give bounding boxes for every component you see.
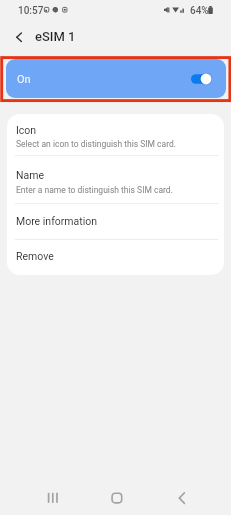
staticText: Icon	[16, 124, 37, 136]
staticText: Remove	[16, 250, 54, 262]
staticText: eSIM 1	[35, 29, 76, 44]
button[interactable]: Remove	[7, 239, 224, 275]
button[interactable]: Home	[100, 481, 134, 515]
button[interactable]: On	[6, 59, 226, 98]
staticText: Select an icon to distinguish this SIM c…	[16, 139, 177, 149]
staticText: Name	[16, 169, 44, 181]
staticText: More information	[16, 215, 98, 227]
staticText: Enter a name to distinguish this SIM car…	[16, 185, 173, 195]
button[interactable]: Name	[7, 155, 224, 203]
button[interactable]: Back	[166, 481, 200, 515]
button[interactable]: More information	[7, 203, 224, 239]
staticText: 64%	[190, 5, 209, 17]
button[interactable]: Navigate up	[6, 24, 32, 50]
button[interactable]: Icon	[7, 114, 224, 155]
button[interactable]: Recent apps	[36, 481, 70, 515]
staticText: On	[17, 73, 31, 86]
staticText: 10:57	[18, 5, 44, 17]
